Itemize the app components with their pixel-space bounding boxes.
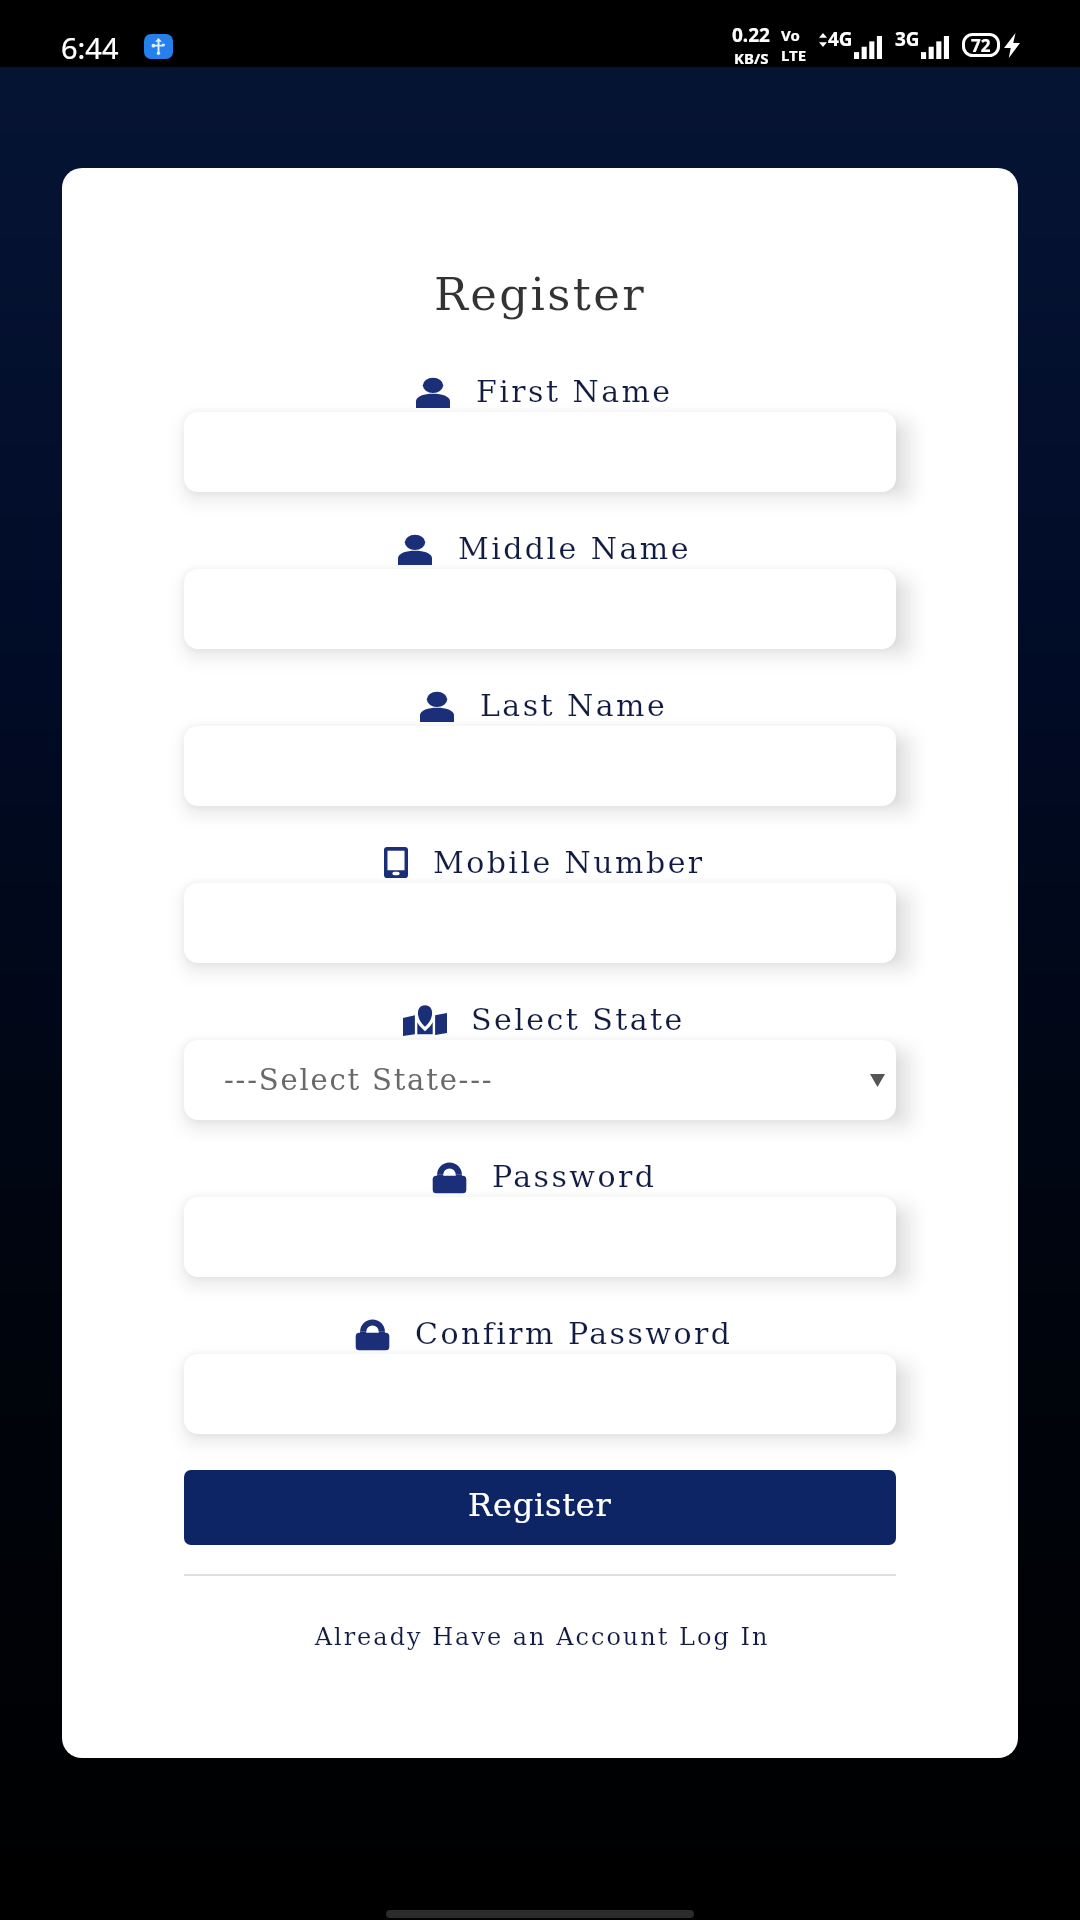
staticText: Mobile Number bbox=[433, 845, 705, 880]
staticText: KB/S bbox=[734, 48, 769, 68]
staticText: Password bbox=[492, 1159, 657, 1194]
staticText: ---Select State--- bbox=[224, 1063, 494, 1097]
staticText: 0.22 bbox=[732, 22, 770, 48]
staticText: Vo bbox=[781, 25, 800, 45]
staticText: Middle Name bbox=[458, 531, 691, 566]
button[interactable]: Register bbox=[184, 1470, 896, 1545]
staticText: Confirm Password bbox=[415, 1316, 733, 1351]
staticText: Register bbox=[62, 268, 1018, 320]
button[interactable]: Already Have an Account Log In bbox=[184, 1623, 896, 1651]
other: USB connected bbox=[144, 34, 173, 59]
staticText: First Name bbox=[476, 374, 673, 409]
staticText: 72 bbox=[971, 34, 991, 57]
staticText: 6:44 bbox=[61, 28, 119, 67]
staticText: Select State bbox=[471, 1002, 685, 1037]
staticText: LTE bbox=[781, 45, 807, 65]
staticText: 4G bbox=[828, 26, 853, 52]
staticText: 3G bbox=[895, 26, 920, 52]
staticText: Register bbox=[468, 1486, 612, 1523]
staticText: Last Name bbox=[480, 688, 668, 723]
button[interactable]: ---Select State--- bbox=[184, 1040, 896, 1120]
